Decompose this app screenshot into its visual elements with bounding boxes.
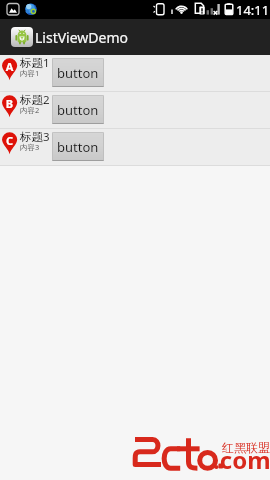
staticText: 标题2 <box>20 92 50 108</box>
staticText: 标题3 <box>20 129 50 145</box>
staticText: 内容2 <box>20 105 40 115</box>
button[interactable]: A <box>0 55 270 91</box>
button[interactable]: App icon <box>11 27 33 47</box>
staticText: 内容1 <box>20 68 40 78</box>
button[interactable]: button <box>52 95 104 124</box>
staticText: 红黑联盟 <box>222 440 270 455</box>
staticText: .com <box>213 443 270 476</box>
button[interactable]: B <box>0 92 270 128</box>
button[interactable]: button <box>52 58 104 87</box>
button[interactable]: button <box>52 132 104 161</box>
staticText: 标题1 <box>20 55 50 71</box>
staticText: B <box>2 96 17 111</box>
staticText: button <box>57 138 99 156</box>
staticText: button <box>57 64 99 82</box>
staticText: A <box>2 59 17 74</box>
staticText: button <box>57 101 99 119</box>
staticText: ListViewDemo <box>35 28 129 47</box>
staticText: 14:11 <box>236 1 270 19</box>
staticText: 内容3 <box>20 142 40 152</box>
staticText: C <box>2 133 17 148</box>
button[interactable]: C <box>0 129 270 165</box>
